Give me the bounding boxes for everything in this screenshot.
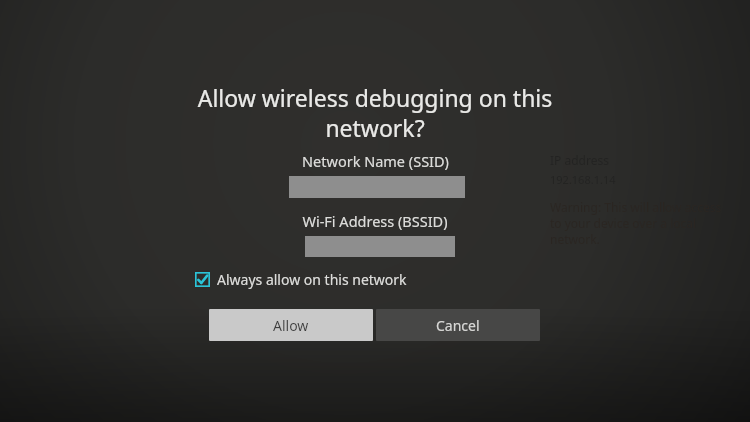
button[interactable]: Allow — [209, 309, 373, 341]
button[interactable]: Always allow on this network — [195, 268, 407, 291]
staticText: Allow wireless debugging on this network… — [165, 82, 585, 143]
staticText: Always allow on this network — [217, 270, 407, 289]
staticText: Allow — [273, 316, 309, 335]
staticText: Wi-Fi Address (BSSID) — [302, 211, 448, 231]
staticText: Network Name (SSID) — [302, 151, 449, 171]
button[interactable]: Cancel — [376, 309, 540, 341]
staticText: Cancel — [436, 316, 480, 335]
